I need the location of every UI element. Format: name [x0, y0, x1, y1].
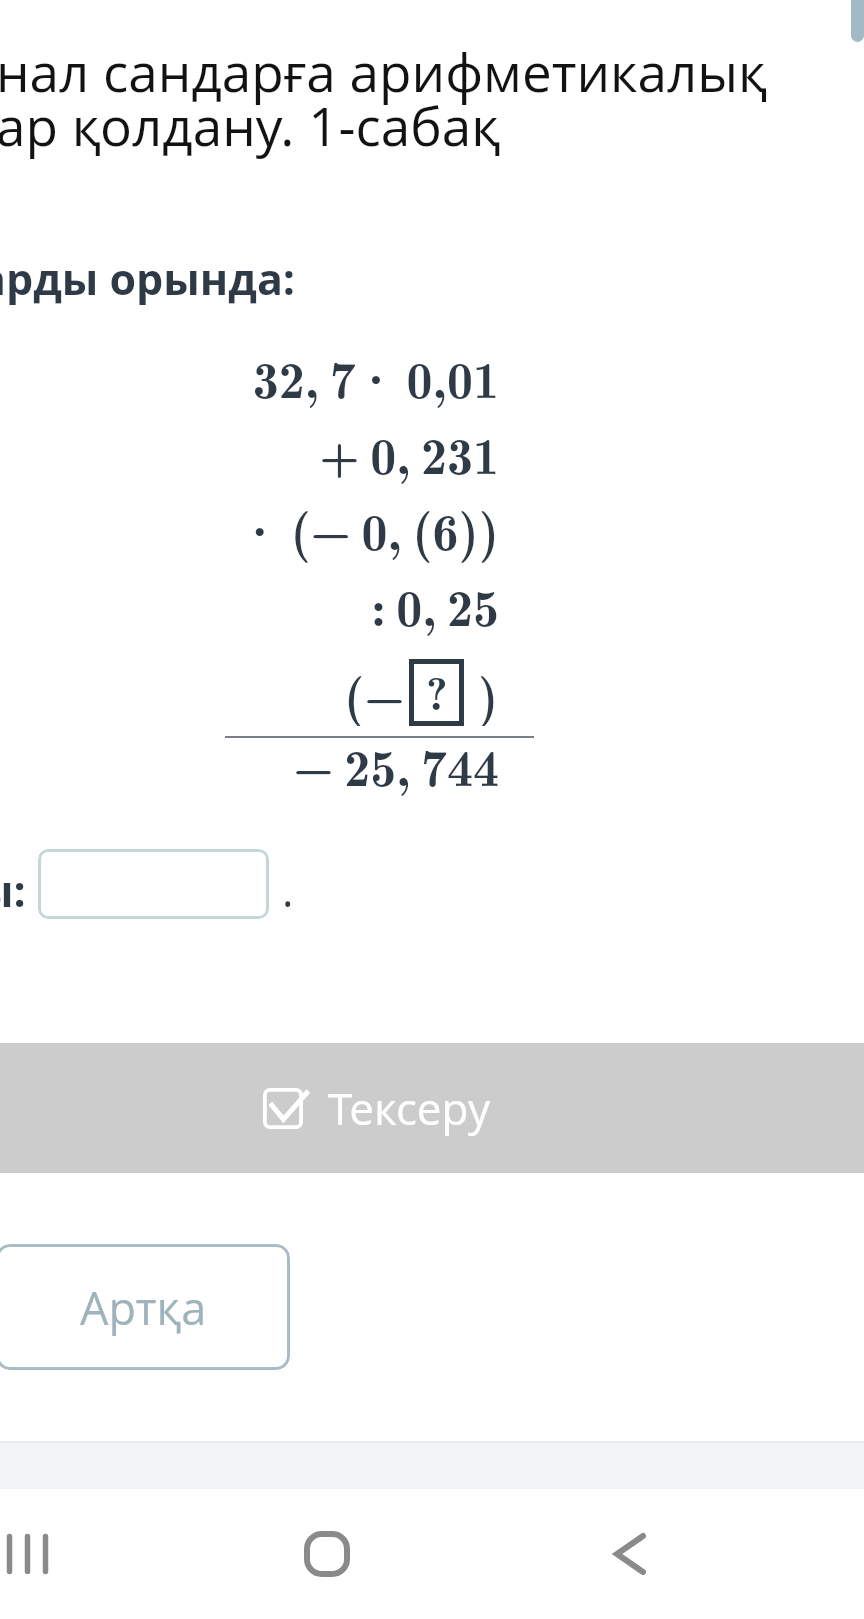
staticText: Тексеру — [328, 1078, 491, 1138]
staticText: . — [282, 861, 294, 920]
staticText: · (− 0, (6)) — [0, 491, 499, 565]
button[interactable]: Home — [263, 1489, 391, 1619]
button[interactable]: Артқа — [0, 1244, 290, 1370]
staticText: 32, 7· 0,01 — [0, 339, 499, 413]
staticText: ы: — [0, 861, 26, 920]
staticText: − 25, 744 — [0, 727, 499, 801]
staticText: арды орында: — [0, 249, 296, 308]
staticText: Артқа — [80, 1277, 207, 1338]
staticText: (− — [344, 656, 405, 726]
button[interactable]: Back — [566, 1489, 694, 1619]
staticText: + 0, 231 — [0, 415, 499, 489]
button[interactable]: ? — [409, 659, 464, 726]
button[interactable] — [38, 849, 269, 919]
staticText: ) — [478, 656, 499, 726]
button[interactable]: Recent apps — [0, 1489, 91, 1619]
staticText: нал сандарға арифметикалық ар қолдану. 1… — [0, 35, 767, 162]
button[interactable]: Тексеру — [0, 1043, 864, 1173]
staticText: : 0, 25 — [0, 567, 499, 641]
staticText: ? — [426, 658, 448, 724]
